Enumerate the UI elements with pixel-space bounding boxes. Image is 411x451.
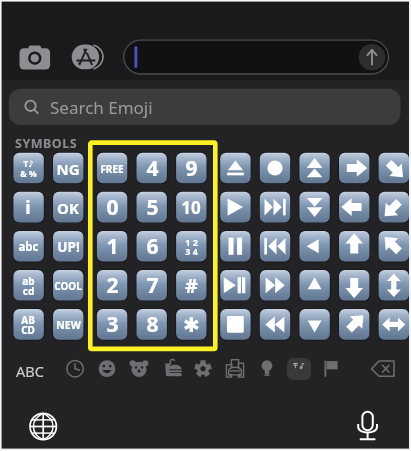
button[interactable]: Emoji [137, 153, 167, 184]
button[interactable]: Emoji [176, 231, 206, 262]
button[interactable]: Emoji [13, 270, 43, 301]
staticText: UP! [57, 238, 80, 256]
staticText: 4 [146, 154, 159, 183]
staticText: ab cd [22, 274, 35, 298]
button[interactable]: Emoji [220, 231, 250, 262]
button[interactable]: Emoji [176, 153, 206, 184]
button[interactable]: Emoji [137, 309, 167, 340]
button[interactable]: Emoji [299, 270, 329, 301]
button[interactable]: Emoji [97, 153, 127, 184]
button[interactable]: Emoji [379, 270, 409, 301]
button[interactable]: Food and drink [159, 357, 183, 381]
button[interactable]: Emoji [53, 231, 83, 262]
button[interactable]: Emoji [176, 309, 206, 340]
button[interactable]: Emoji [339, 231, 369, 262]
button[interactable]: Emoji [260, 192, 290, 223]
staticText: FREE [100, 162, 124, 176]
button[interactable]: Emoji [13, 153, 43, 184]
button[interactable]: Emoji [137, 231, 167, 262]
staticText: T♪ & % [20, 158, 37, 179]
button[interactable] [9, 89, 401, 125]
button[interactable]: Emoji [53, 153, 83, 184]
button[interactable]: Emoji [97, 270, 127, 301]
staticText: 1 [106, 232, 119, 261]
staticText: SYMBOLS [15, 135, 78, 152]
button[interactable]: Emoji [260, 153, 290, 184]
staticText: 7 [146, 271, 159, 300]
staticText: 3 [106, 310, 119, 339]
button[interactable]: Symbols [287, 357, 311, 381]
button[interactable]: App Store [72, 44, 101, 72]
button[interactable]: Recently used [63, 357, 87, 381]
button[interactable]: Camera [20, 44, 51, 71]
button[interactable]: Emoji [53, 309, 83, 340]
button[interactable]: Emoji [137, 270, 167, 301]
button[interactable]: Emoji [53, 270, 83, 301]
button[interactable]: Emoji [176, 270, 206, 301]
staticText: NG [56, 159, 80, 179]
staticText: # [185, 272, 198, 299]
button[interactable]: Dictation [354, 410, 382, 442]
button[interactable]: Emoji [379, 153, 409, 184]
button[interactable]: Emoji [299, 309, 329, 340]
button[interactable]: Emoji [13, 231, 43, 262]
staticText: 5 [146, 193, 159, 222]
button[interactable]: Emoji [299, 231, 329, 262]
button[interactable]: Change keyboard [29, 412, 58, 441]
button[interactable]: Objects [255, 357, 279, 381]
button[interactable]: Send [358, 44, 386, 72]
button[interactable]: Emoji [220, 153, 250, 184]
button[interactable]: Emoji [379, 309, 409, 340]
button[interactable]: Smileys and people [95, 357, 119, 381]
button[interactable]: Emoji [299, 153, 329, 184]
staticText: abc [18, 239, 39, 255]
button[interactable]: Emoji [260, 231, 290, 262]
staticText: i [25, 195, 31, 220]
button[interactable]: Animals and nature [127, 357, 151, 381]
button[interactable]: Emoji [379, 192, 409, 223]
button[interactable]: Emoji [220, 309, 250, 340]
button[interactable]: Activity [191, 357, 215, 381]
staticText: 2 [106, 271, 119, 300]
button[interactable]: Delete [371, 358, 397, 380]
staticText: Search Emoji [50, 96, 153, 119]
button[interactable]: Emoji [299, 192, 329, 223]
button[interactable]: Emoji [13, 192, 43, 223]
button[interactable]: Emoji [339, 309, 369, 340]
staticText: 6 [146, 232, 159, 261]
button[interactable]: Emoji [220, 270, 250, 301]
staticText: ✱ [183, 313, 200, 336]
button[interactable]: Emoji [379, 231, 409, 262]
button[interactable]: Travel and places [223, 357, 247, 381]
button[interactable]: Emoji [97, 309, 127, 340]
button[interactable] [12, 357, 50, 379]
button[interactable]: Emoji [220, 192, 250, 223]
button[interactable]: Emoji [339, 192, 369, 223]
staticText: 10 [181, 196, 201, 219]
staticText: 1 2 3 4 [185, 236, 198, 258]
staticText: 9 [185, 154, 198, 183]
button[interactable]: Emoji [53, 192, 83, 223]
staticText: 0 [106, 193, 119, 222]
button[interactable]: Emoji [339, 270, 369, 301]
staticText: AB CD [21, 313, 35, 337]
staticText: COOL [54, 279, 82, 293]
button[interactable]: Emoji [97, 192, 127, 223]
button[interactable]: Emoji [137, 192, 167, 223]
staticText: ABC [16, 361, 44, 381]
staticText: 8 [146, 310, 159, 339]
button[interactable]: Emoji [260, 270, 290, 301]
button[interactable]: Emoji [260, 309, 290, 340]
staticText: NEW [56, 318, 81, 332]
button[interactable]: Emoji [97, 231, 127, 262]
button[interactable]: Emoji [339, 153, 369, 184]
button[interactable]: Emoji [176, 192, 206, 223]
button[interactable]: Emoji [13, 309, 43, 340]
staticText: OK [57, 198, 79, 218]
